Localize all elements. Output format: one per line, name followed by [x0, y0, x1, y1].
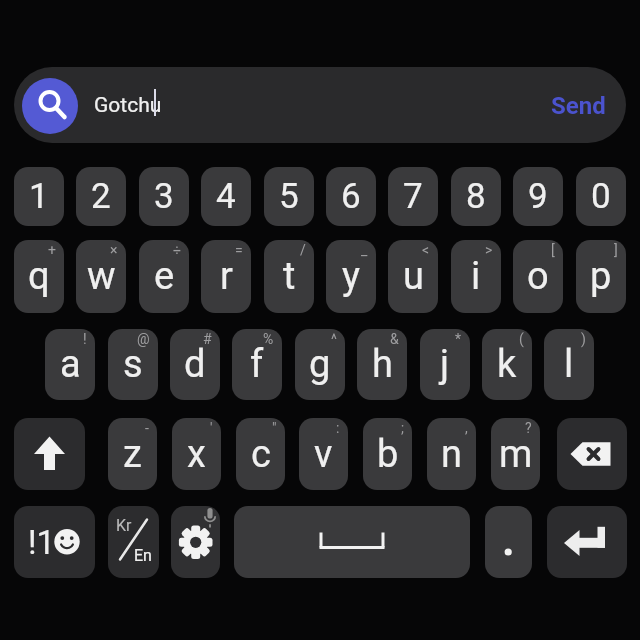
button[interactable]: r: [201, 240, 251, 313]
staticText: 4: [216, 176, 236, 217]
button[interactable]: n: [427, 418, 476, 490]
staticText: f: [250, 342, 264, 387]
staticText: :: [336, 420, 340, 436]
button[interactable]: g: [295, 329, 345, 400]
staticText: m: [499, 432, 533, 477]
staticText: v: [314, 432, 333, 477]
button[interactable]: [557, 418, 627, 490]
staticText: q: [28, 254, 50, 299]
staticText: !: [83, 331, 87, 347]
staticText: ': [210, 420, 213, 436]
staticText: >: [485, 242, 493, 258]
button[interactable]: !1: [14, 506, 95, 578]
staticText: o: [527, 254, 549, 299]
staticText: x: [187, 432, 206, 477]
button[interactable]: b: [363, 418, 412, 490]
staticText: p: [590, 254, 612, 299]
button[interactable]: [14, 418, 85, 490]
staticText: z: [123, 432, 142, 477]
button[interactable]: l: [544, 329, 594, 400]
button[interactable]: f: [232, 329, 282, 400]
button[interactable]: [14, 67, 626, 143]
staticText: %: [263, 331, 274, 347]
staticText: En: [134, 546, 152, 565]
staticText: n: [441, 432, 462, 477]
button[interactable]: [22, 78, 78, 134]
button[interactable]: Kr: [108, 506, 159, 578]
button[interactable]: [547, 506, 627, 578]
staticText: u: [403, 254, 424, 299]
button[interactable]: Send: [551, 92, 606, 120]
staticText: 2: [91, 176, 111, 217]
button[interactable]: u: [388, 240, 438, 313]
staticText: i: [471, 254, 481, 299]
button[interactable]: x: [172, 418, 221, 490]
staticText: ]: [614, 242, 618, 258]
staticText: Gotchu: [94, 93, 162, 118]
staticText: -: [145, 420, 149, 436]
staticText: r: [220, 254, 233, 299]
staticText: w: [87, 254, 116, 299]
button[interactable]: o: [513, 240, 563, 313]
staticText: s: [123, 342, 143, 387]
button[interactable]: q: [14, 240, 64, 313]
button[interactable]: t: [264, 240, 314, 313]
staticText: 9: [528, 176, 548, 217]
button[interactable]: [171, 506, 220, 578]
staticText: g: [309, 342, 331, 387]
staticText: =: [235, 242, 243, 258]
staticText: l: [564, 342, 574, 387]
staticText: ÷: [173, 242, 181, 258]
staticText: @: [137, 331, 150, 347]
staticText: /: [300, 242, 306, 258]
button[interactable]: [485, 506, 532, 578]
button[interactable]: h: [357, 329, 407, 400]
staticText: e: [154, 254, 175, 299]
button[interactable]: p: [576, 240, 626, 313]
button[interactable]: v: [299, 418, 348, 490]
staticText: ×: [110, 242, 118, 258]
button[interactable]: y: [326, 240, 376, 313]
button[interactable]: 8: [451, 167, 501, 226]
button[interactable]: i: [451, 240, 501, 313]
button[interactable]: 9: [513, 167, 563, 226]
staticText: d: [184, 342, 206, 387]
button[interactable]: e: [139, 240, 189, 313]
staticText: h: [372, 342, 393, 387]
button[interactable]: z: [108, 418, 157, 490]
button[interactable]: d: [170, 329, 220, 400]
staticText: 7: [403, 176, 423, 217]
button[interactable]: 4: [201, 167, 251, 226]
staticText: t: [283, 254, 296, 299]
button[interactable]: 0: [576, 167, 626, 226]
button[interactable]: 1: [14, 167, 64, 226]
staticText: [: [551, 242, 555, 258]
staticText: j: [440, 342, 450, 387]
button[interactable]: 2: [76, 167, 126, 226]
staticText: c: [251, 432, 271, 477]
button[interactable]: s: [108, 329, 158, 400]
button[interactable]: k: [482, 329, 532, 400]
staticText: _: [361, 242, 368, 258]
button[interactable]: c: [236, 418, 285, 490]
button[interactable]: j: [420, 329, 470, 400]
button[interactable]: w: [76, 240, 126, 313]
button[interactable]: 5: [264, 167, 314, 226]
staticText: a: [60, 342, 81, 387]
button[interactable]: 7: [388, 167, 438, 226]
staticText: !1: [28, 523, 56, 562]
staticText: ": [272, 420, 277, 436]
button[interactable]: [234, 506, 470, 578]
staticText: +: [48, 242, 56, 258]
button[interactable]: 3: [139, 167, 189, 226]
button[interactable]: a: [45, 329, 95, 400]
staticText: ^: [331, 331, 337, 347]
staticText: ): [581, 331, 586, 347]
staticText: *: [455, 331, 462, 347]
button[interactable]: m: [491, 418, 540, 490]
button[interactable]: 6: [326, 167, 376, 226]
staticText: <: [422, 242, 430, 258]
staticText: 3: [154, 176, 174, 217]
staticText: ;: [401, 420, 404, 436]
staticText: b: [377, 432, 399, 477]
